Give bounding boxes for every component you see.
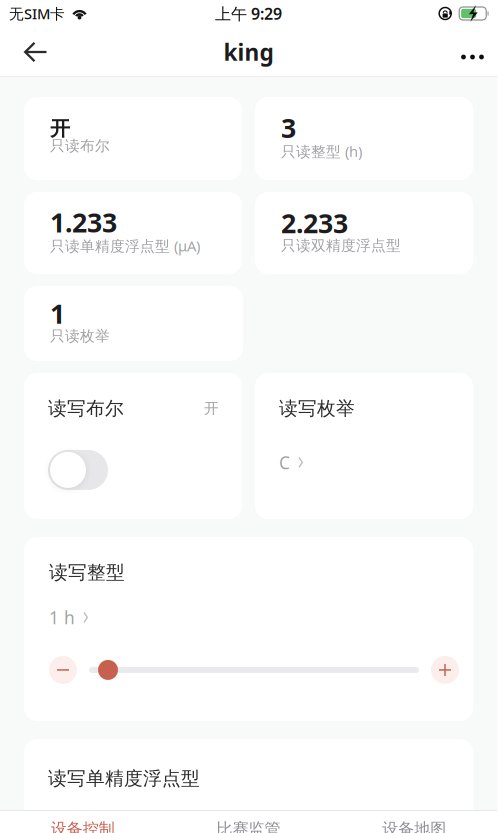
staticText: 1 <box>50 296 65 331</box>
staticText: 读写布尔 <box>48 397 124 420</box>
button[interactable]: 比赛监管 <box>166 810 331 833</box>
staticText: 1.233 <box>50 205 117 240</box>
staticText: 开 <box>50 116 70 141</box>
staticText: 读写单精度浮点型 <box>48 767 200 790</box>
staticText: 设备地图 <box>382 819 446 833</box>
button[interactable]: 读写枚举 <box>255 373 473 519</box>
button[interactable]: 1.233 <box>24 192 242 274</box>
button[interactable]: 开 <box>24 97 242 180</box>
button[interactable]: 减少 <box>49 656 77 684</box>
button[interactable]: 读写布尔 <box>24 373 242 519</box>
staticText: 开 <box>204 399 219 417</box>
staticText: 只读整型 (h) <box>281 141 362 161</box>
staticText: 设备控制 <box>51 819 115 833</box>
staticText: 2.233 <box>281 205 348 241</box>
staticText: 只读枚举 <box>50 327 110 345</box>
staticText: 只读布尔 <box>50 137 110 155</box>
staticText: king <box>223 37 273 67</box>
staticText: 读写整型 <box>49 561 125 584</box>
staticText: 无SIM卡 <box>9 4 65 23</box>
button[interactable]: 增加 <box>431 656 459 684</box>
button[interactable]: 2.233 <box>255 192 473 274</box>
staticText: 1 h <box>49 606 75 629</box>
button[interactable]: 设备地图 <box>331 810 497 833</box>
button[interactable]: 1 <box>24 286 243 361</box>
button[interactable]: 1 h <box>49 606 88 629</box>
staticText: C <box>279 451 290 474</box>
button[interactable]: 返回 <box>0 28 64 76</box>
staticText: 只读双精度浮点型 <box>281 237 401 255</box>
button[interactable]: 更多 <box>447 29 497 75</box>
button[interactable]: 设备控制 <box>0 810 166 833</box>
staticText: 只读单精度浮点型 (μA) <box>50 236 200 255</box>
staticText: 上午 9:29 <box>215 3 282 24</box>
staticText: 读写枚举 <box>279 397 355 420</box>
button[interactable]: 3 <box>255 97 473 180</box>
staticText: 3 <box>281 110 296 145</box>
staticText: 比赛监管 <box>216 819 280 833</box>
